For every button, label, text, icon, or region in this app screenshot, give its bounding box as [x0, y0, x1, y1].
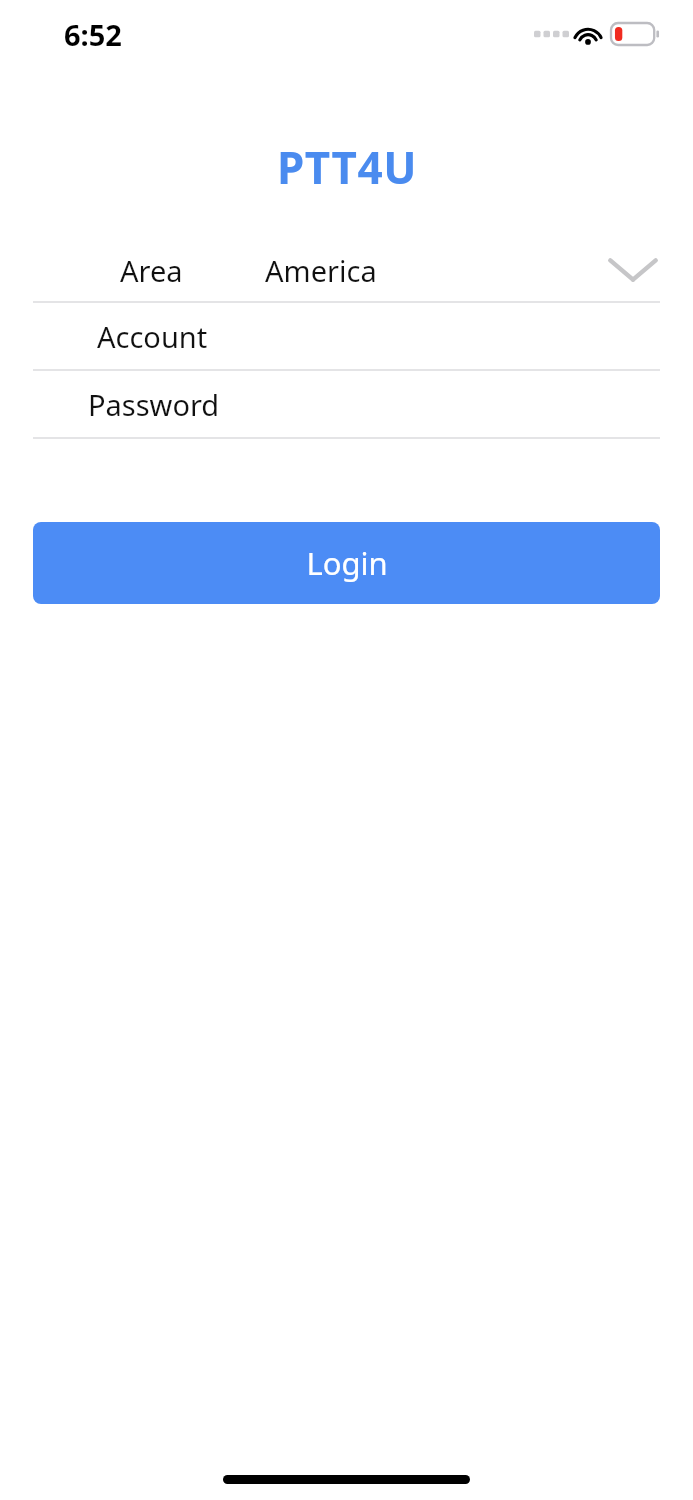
button[interactable]: Area: [33, 239, 660, 301]
staticText: Area: [120, 251, 183, 290]
staticText: PTT4U: [277, 137, 417, 197]
staticText: 6:52: [64, 15, 122, 54]
staticText: Account: [97, 317, 208, 356]
button[interactable]: Account: [33, 303, 660, 369]
staticText: Password: [88, 385, 220, 424]
staticText: America: [265, 251, 377, 290]
button[interactable]: Password: [33, 371, 660, 437]
button[interactable]: Login: [33, 522, 660, 604]
staticText: Login: [306, 542, 388, 584]
